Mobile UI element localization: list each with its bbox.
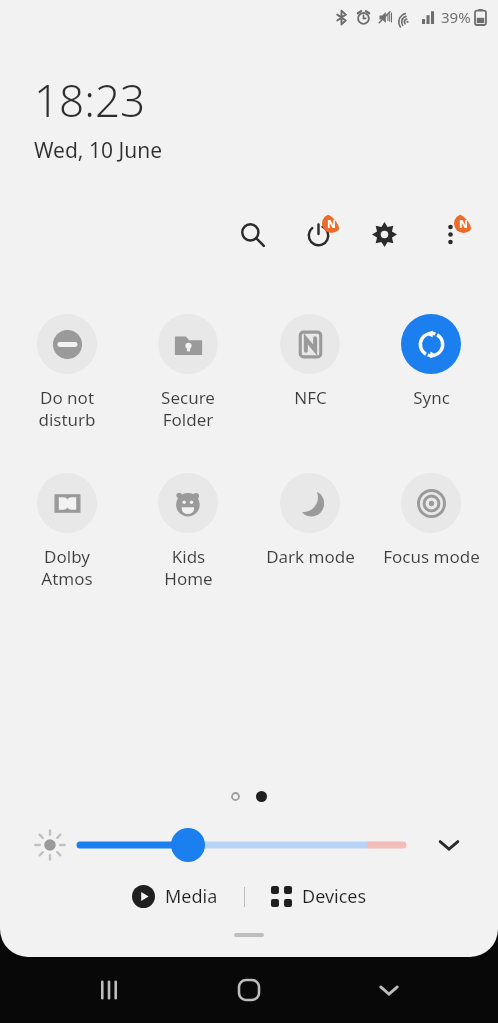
button[interactable]: Secure Folder — [133, 306, 243, 431]
staticText: 18:23 — [34, 70, 146, 130]
staticText: Wed, 10 June — [34, 136, 162, 165]
button[interactable]: Sync — [376, 306, 486, 409]
button[interactable]: Media — [124, 878, 226, 915]
button[interactable]: NFC — [255, 306, 365, 409]
button[interactable]: Expand brightness settings — [432, 828, 466, 862]
staticText: N — [459, 216, 468, 231]
button[interactable]: Power off — [296, 212, 340, 256]
staticText: Do not disturb — [38, 386, 96, 431]
other: Brightness — [33, 828, 67, 862]
button[interactable]: Recents — [78, 959, 140, 1021]
button[interactable]: Devices — [263, 878, 375, 915]
staticText: 39% — [441, 7, 471, 27]
button[interactable]: Dolby Atmos — [12, 465, 122, 590]
staticText: Dolby Atmos — [41, 545, 93, 590]
button[interactable]: Focus mode — [376, 465, 486, 568]
staticText: Devices — [302, 884, 367, 909]
button[interactable]: Brightness slider — [80, 820, 403, 870]
staticText: Sync — [413, 386, 450, 409]
staticText: Kids Home — [164, 545, 213, 590]
button[interactable]: Search — [230, 212, 274, 256]
button[interactable]: Do not disturb — [12, 306, 122, 431]
staticText: Media — [165, 884, 218, 909]
button[interactable]: Kids Home — [133, 465, 243, 590]
button[interactable]: Back — [358, 959, 420, 1021]
staticText: Secure Folder — [161, 386, 215, 431]
button[interactable]: More options — [428, 212, 472, 256]
staticText: Dark mode — [266, 545, 355, 568]
button[interactable]: Dark mode — [255, 465, 365, 568]
button[interactable]: Settings — [362, 212, 406, 256]
button[interactable]: Home — [218, 959, 280, 1021]
staticText: NFC — [294, 386, 327, 409]
staticText: N — [327, 216, 336, 231]
staticText: Focus mode — [383, 545, 480, 568]
